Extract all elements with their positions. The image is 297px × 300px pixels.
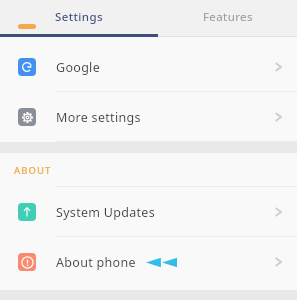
button[interactable]: Settings — [0, 0, 158, 34]
staticText: More settings — [56, 109, 141, 126]
staticText: Google — [56, 59, 100, 76]
staticText: System Updates — [56, 204, 156, 221]
staticText: Settings — [55, 9, 103, 25]
other: Open System Updates — [267, 201, 289, 223]
button[interactable]: More settings — [0, 92, 297, 142]
other: Open Google — [267, 56, 289, 78]
staticText: Features — [203, 9, 253, 25]
staticText: About phone — [56, 254, 136, 271]
button[interactable]: About phone — [0, 237, 297, 287]
staticText: ABOUT — [14, 164, 52, 177]
button[interactable]: System Updates — [0, 187, 297, 237]
button[interactable]: Google — [0, 42, 297, 92]
button[interactable]: Features — [158, 0, 297, 34]
other: Open About phone — [267, 251, 289, 273]
other: Open More settings — [267, 106, 289, 128]
